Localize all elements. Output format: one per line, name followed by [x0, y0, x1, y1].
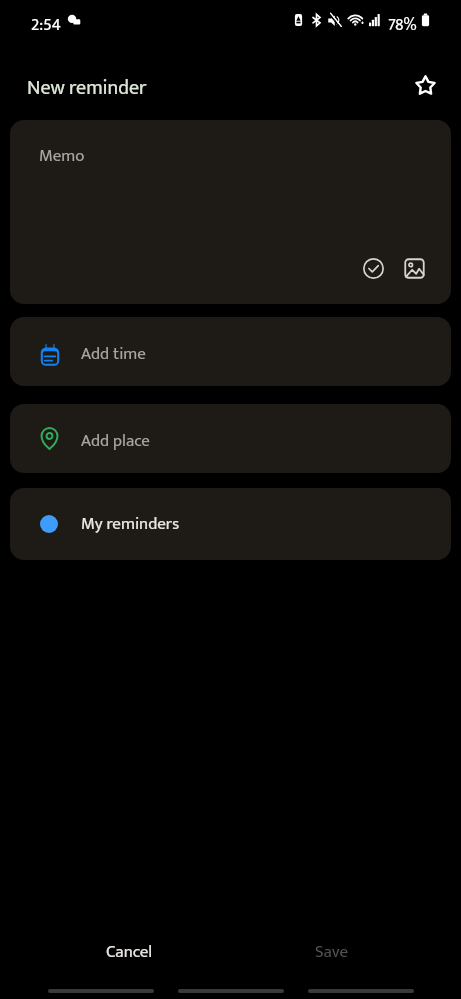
staticText: Memo	[39, 142, 85, 170]
button[interactable]: My reminders	[10, 488, 451, 560]
staticText: 78%	[388, 12, 417, 39]
staticText: My reminders	[81, 510, 180, 538]
button[interactable]: Favourite	[405, 65, 445, 105]
button[interactable]: Add time	[10, 317, 451, 386]
staticText: Save	[315, 938, 349, 966]
staticText: Add place	[81, 427, 150, 455]
button[interactable]: Add checklist	[358, 253, 389, 284]
button[interactable]: Add place	[10, 404, 451, 473]
button[interactable]: Save	[230, 928, 433, 976]
staticText: New reminder	[27, 71, 147, 104]
staticText: Add time	[81, 340, 146, 368]
staticText: Cancel	[106, 938, 153, 966]
button[interactable]: Cancel	[28, 928, 230, 976]
staticText: 2:54	[31, 11, 61, 39]
button[interactable]: Memo	[10, 120, 451, 304]
button[interactable]: Add image	[399, 253, 430, 284]
